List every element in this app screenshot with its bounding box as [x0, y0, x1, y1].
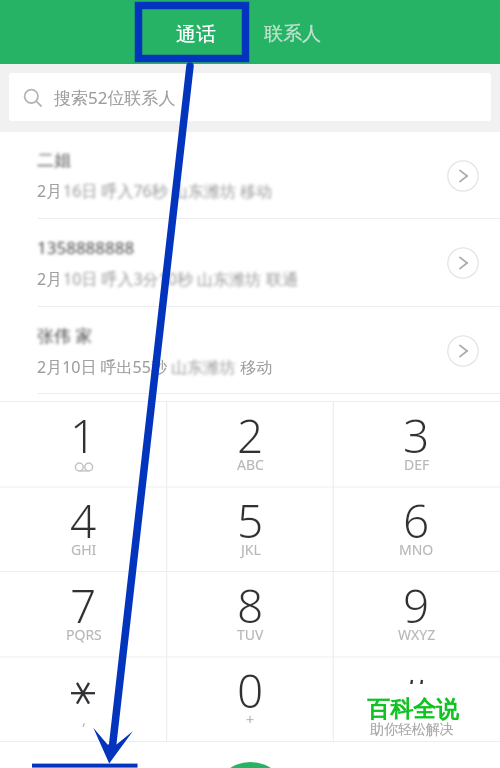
button[interactable]: Call details — [447, 247, 479, 279]
button[interactable]: 9 — [333, 572, 500, 657]
staticText: MNO — [399, 540, 434, 559]
staticText: 张伟 家 — [37, 324, 93, 347]
staticText: 6 — [403, 489, 430, 552]
button[interactable]: 0 — [167, 657, 334, 742]
button[interactable]: , — [0, 657, 167, 742]
staticText: 0 — [237, 659, 264, 722]
button[interactable]: 2 — [167, 402, 334, 487]
staticText: 16日 呼入76秒 山东潍坊 移动 — [63, 180, 273, 202]
button[interactable]: 5 — [167, 487, 334, 572]
button[interactable]: 1358888888 — [0, 219, 500, 307]
staticText: 山东潍坊 — [167, 356, 236, 378]
staticText: 8 — [237, 574, 264, 637]
staticText: 1358888888 — [37, 236, 135, 259]
staticText: ABC — [237, 455, 264, 474]
staticText: 2月 — [37, 268, 63, 290]
staticText: 10日 呼入3分10秒 山东潍坊 — [63, 268, 262, 290]
button[interactable]: 通话 — [148, 6, 243, 62]
button[interactable]: 联系人 — [245, 6, 340, 62]
button[interactable]: 6 — [333, 487, 500, 572]
staticText: 二姐 — [37, 150, 71, 171]
staticText: 2月10日 呼出55秒 — [37, 356, 167, 378]
staticText: 3 — [403, 404, 430, 467]
staticText: 移动 — [236, 356, 273, 378]
button[interactable]: Call details — [447, 335, 479, 367]
staticText: 7 — [70, 574, 97, 637]
staticText: 通话 — [176, 22, 216, 47]
button[interactable]: 4 — [0, 487, 167, 572]
staticText: 联系人 — [264, 22, 321, 46]
button[interactable] — [333, 657, 500, 742]
button[interactable]: Call — [213, 762, 288, 768]
staticText: DEF — [404, 455, 430, 474]
staticText: GHI — [71, 540, 97, 559]
staticText: 搜索52位联系人 — [54, 86, 176, 109]
staticText: 5 — [237, 489, 264, 552]
button[interactable]: Call details — [447, 160, 479, 192]
button[interactable]: 搜索52位联系人 — [9, 73, 491, 121]
button[interactable]: 张伟 家 — [0, 307, 500, 394]
button[interactable]: 二姐 — [0, 132, 500, 219]
staticText: + — [246, 710, 255, 729]
staticText: TUV — [237, 625, 264, 644]
staticText: 2 — [237, 404, 264, 467]
button[interactable]: 7 — [0, 572, 167, 657]
staticText: 1 — [70, 404, 97, 467]
staticText: 2月 — [37, 180, 63, 202]
staticText: JKL — [241, 540, 261, 559]
button[interactable]: 3 — [333, 402, 500, 487]
staticText: 4 — [70, 489, 97, 552]
staticText: WXYZ — [398, 625, 436, 644]
staticText: 助你轻松解决 — [370, 721, 454, 739]
button[interactable]: 1 — [0, 402, 167, 487]
staticText: 9 — [403, 574, 430, 637]
staticText: PQRS — [66, 625, 102, 644]
staticText: 百科全说 — [367, 695, 459, 721]
staticText: 联通 — [262, 268, 299, 290]
staticText: , — [82, 710, 86, 729]
button[interactable]: 8 — [167, 572, 334, 657]
